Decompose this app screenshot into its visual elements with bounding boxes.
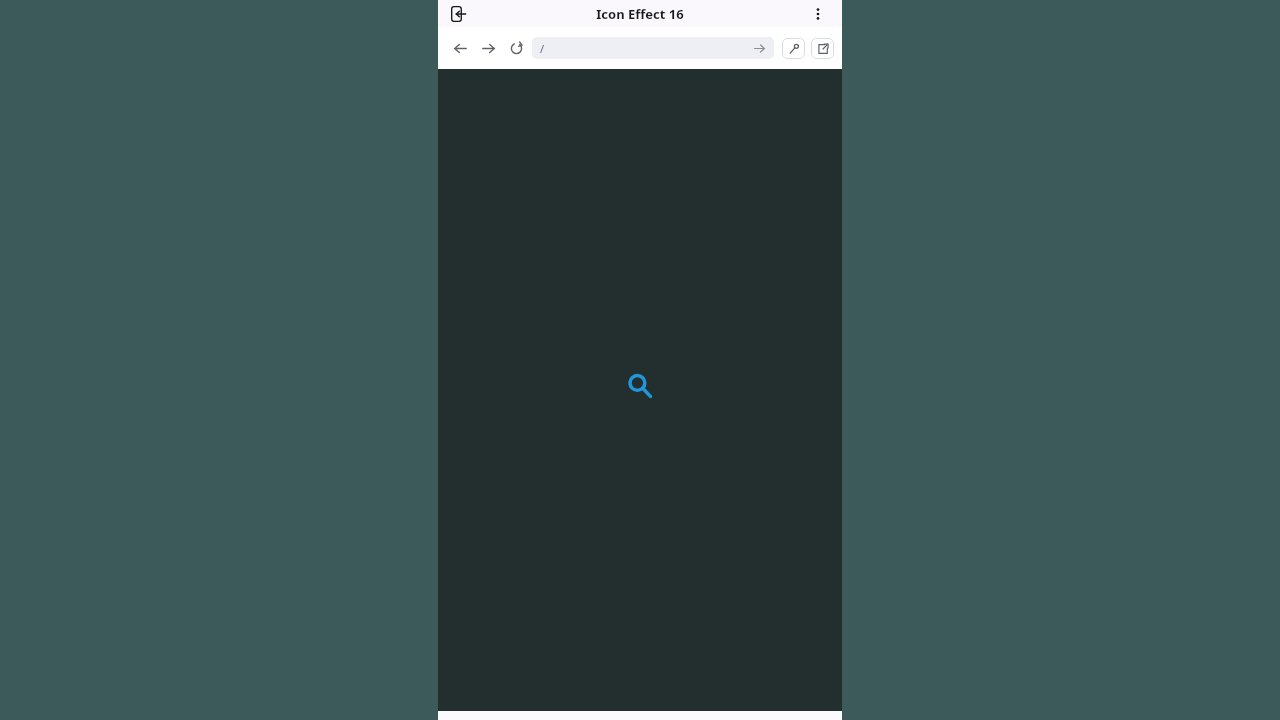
staticText: / [540,41,545,56]
button[interactable]: Developer tools [782,38,805,59]
button[interactable]: Reload [502,34,530,62]
staticText: Icon Effect 16 [596,5,684,23]
button[interactable]: Search [625,371,655,401]
button[interactable]: More options [808,4,828,24]
button[interactable]: Open in new window [811,38,834,59]
button[interactable]: Forward [474,34,502,62]
button[interactable]: / [532,37,774,59]
button[interactable]: Back [446,34,474,62]
button[interactable]: Exit [448,3,470,25]
